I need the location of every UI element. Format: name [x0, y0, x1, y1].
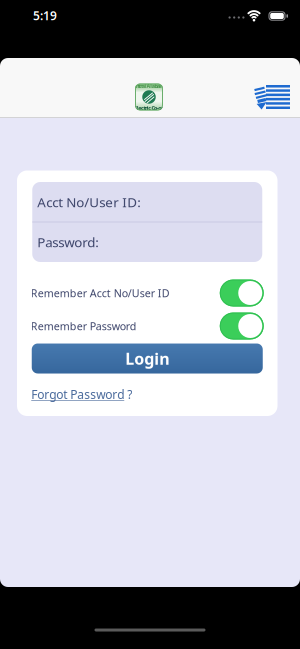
button[interactable]: Report outage — [248, 84, 284, 109]
staticText: 5:19 — [33, 7, 57, 23]
button[interactable]: Login — [32, 343, 263, 373]
staticText: Forgot Password — [31, 386, 124, 402]
button[interactable]: Remember Password — [220, 312, 264, 339]
staticText: Electric Co-op — [134, 104, 164, 112]
staticText: Password: — [37, 233, 99, 251]
button[interactable]: Acct No/User ID: — [32, 182, 262, 222]
staticText: Acct No/User ID: — [37, 193, 141, 211]
staticText: Remember Acct No/User ID — [31, 286, 170, 300]
staticText: Remember Password — [31, 319, 137, 333]
button[interactable]: Central Alabama Electric Co-op — [135, 83, 163, 110]
button[interactable]: Forgot Password — [31, 386, 132, 402]
staticText: ? — [127, 386, 132, 402]
staticText: Login — [125, 348, 169, 369]
button[interactable]: Remember Acct No/User ID — [220, 279, 264, 306]
button[interactable]: Password: — [32, 222, 262, 262]
staticText: Central Alabama — [131, 82, 167, 89]
